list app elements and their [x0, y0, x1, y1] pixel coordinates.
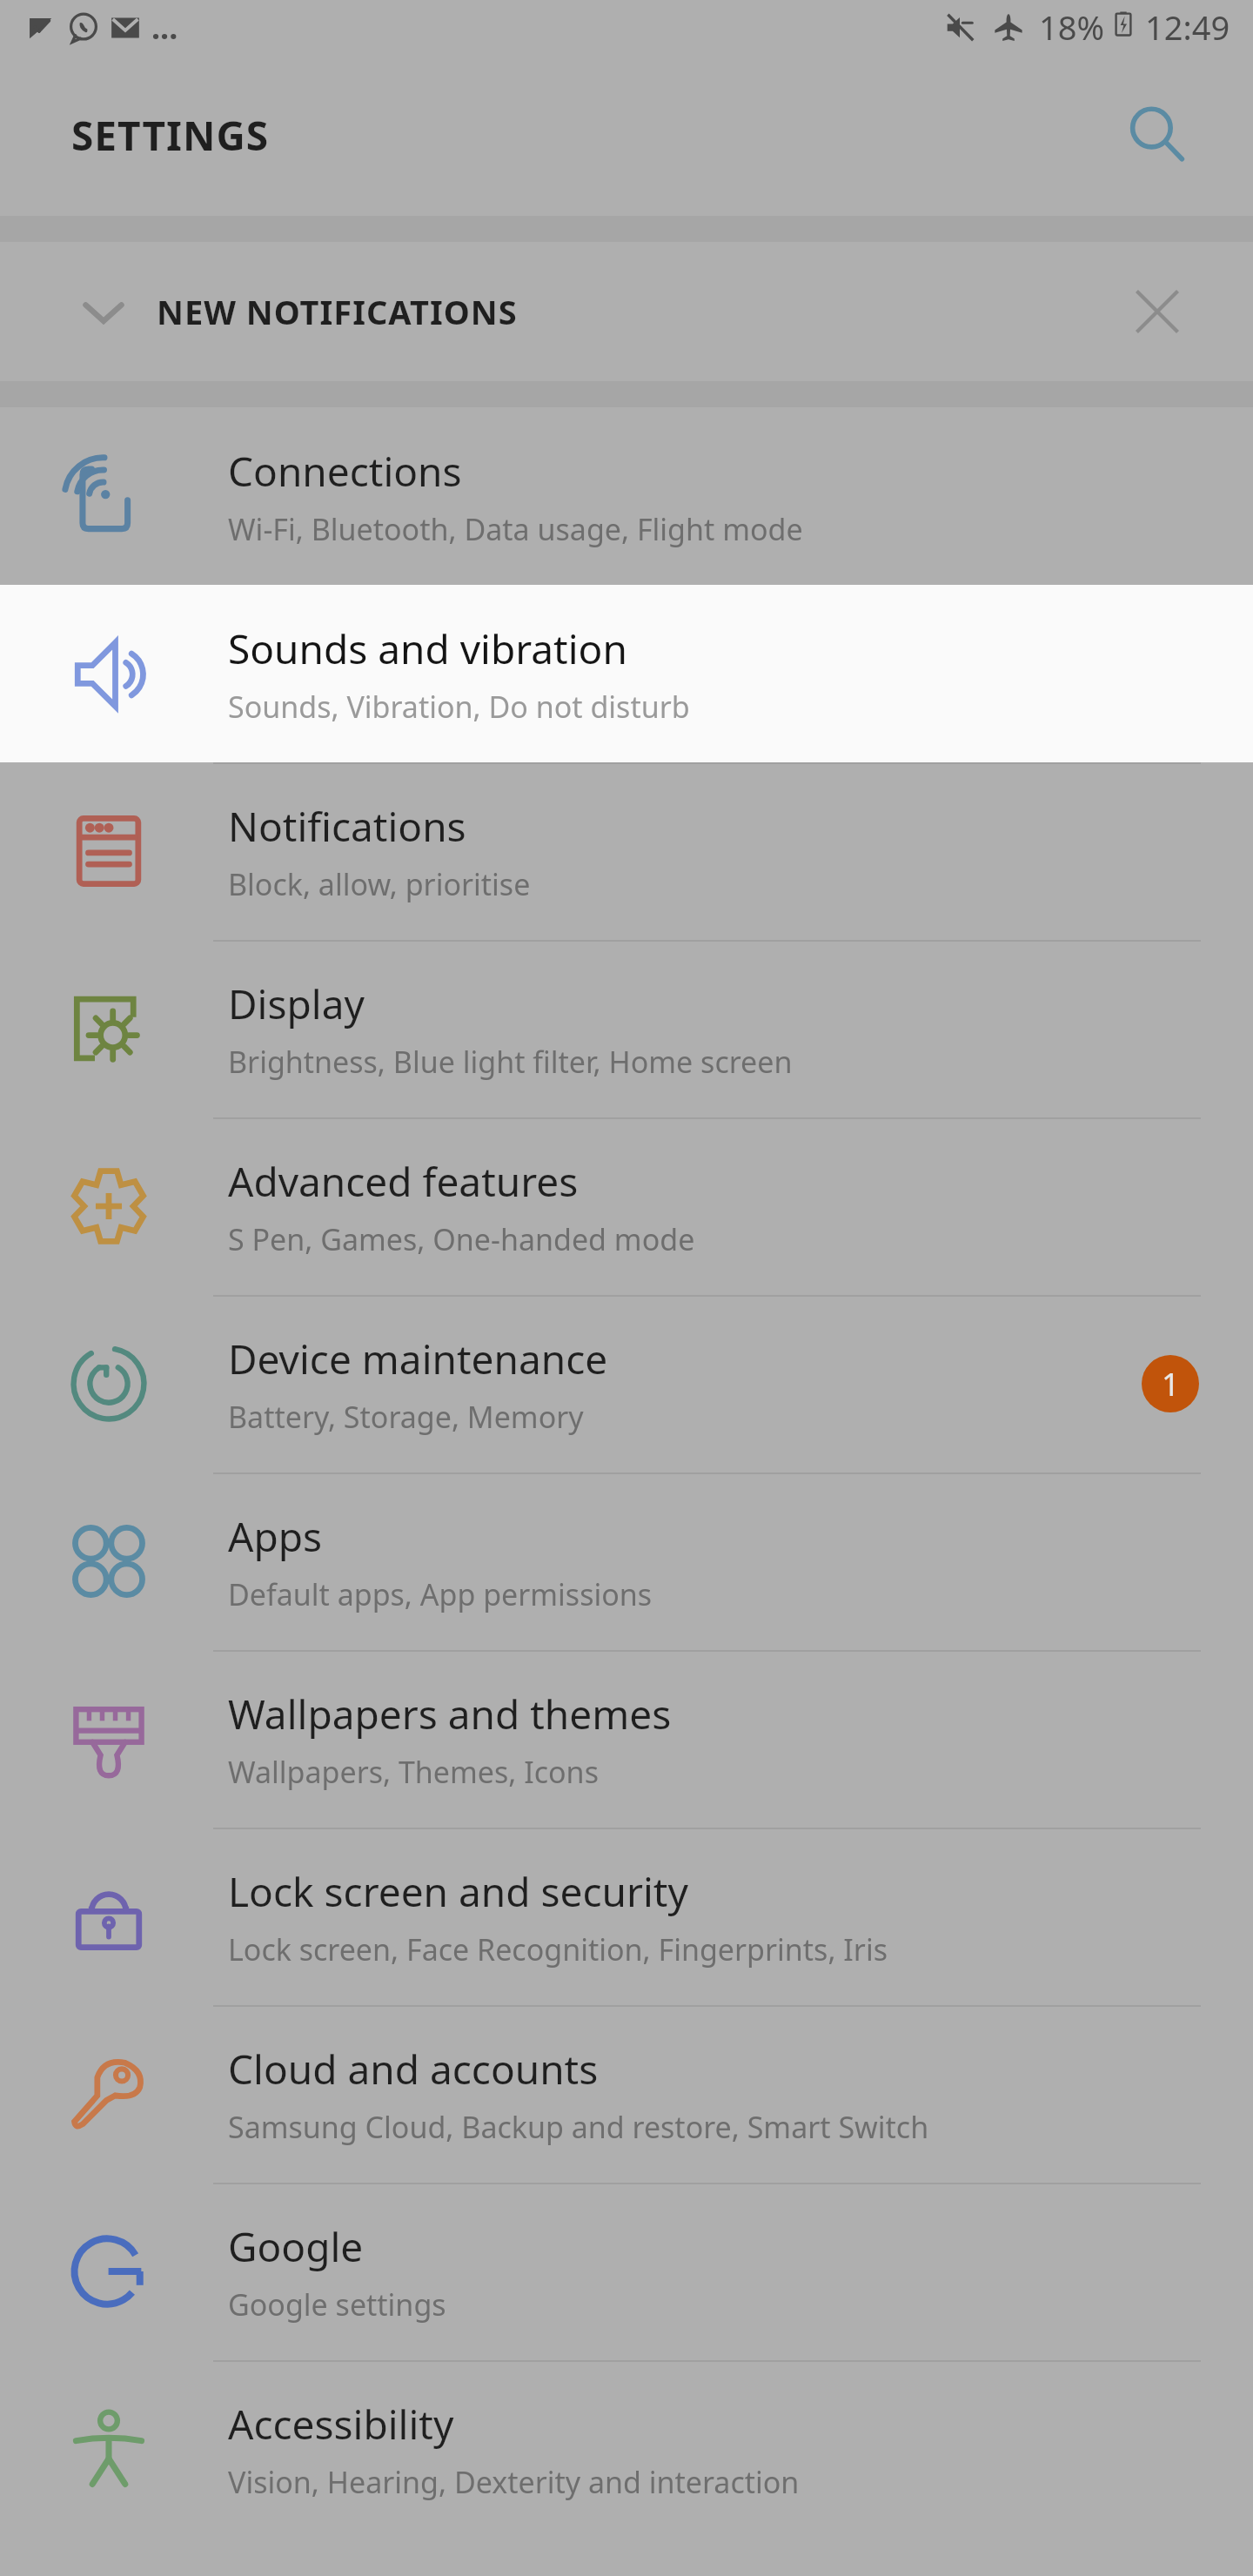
- staticText: Accessibility: [228, 2397, 454, 2452]
- staticText: Wallpapers and themes: [228, 1687, 672, 1741]
- button[interactable]: Google: [0, 2183, 1253, 2360]
- button[interactable]: Apps: [0, 1472, 1253, 1650]
- staticText: 18%: [1039, 4, 1105, 50]
- staticText: Advanced features: [228, 1154, 579, 1209]
- staticText: NEW NOTIFICATIONS: [157, 289, 518, 334]
- staticText: Wi-Fi, Bluetooth, Data usage, Flight mod…: [228, 509, 803, 549]
- button[interactable]: Search: [1116, 93, 1199, 177]
- staticText: Lock screen and security: [228, 1864, 688, 1919]
- staticText: Google settings: [228, 2284, 446, 2324]
- staticText: Wallpapers, Themes, Icons: [228, 1752, 599, 1792]
- staticText: Block, allow, prioritise: [228, 864, 531, 904]
- button[interactable]: Dismiss notifications: [1116, 270, 1199, 353]
- staticText: ...: [151, 6, 178, 49]
- staticText: Apps: [228, 1509, 323, 1564]
- staticText: Default apps, App permissions: [228, 1574, 653, 1614]
- staticText: Battery, Storage, Memory: [228, 1397, 584, 1437]
- staticText: S Pen, Games, One-handed mode: [228, 1219, 695, 1259]
- staticText: Cloud and accounts: [228, 2042, 599, 2096]
- button[interactable]: Sounds and vibration: [0, 585, 1253, 762]
- button[interactable]: Connections: [0, 407, 1253, 585]
- staticText: 1: [1162, 1363, 1180, 1405]
- staticText: Sounds, Vibration, Do not disturb: [228, 687, 690, 727]
- button[interactable]: Notifications: [0, 762, 1253, 940]
- staticText: Vision, Hearing, Dexterity and interacti…: [228, 2462, 800, 2502]
- button[interactable]: Lock screen and security: [0, 1828, 1253, 2005]
- staticText: Sounds and vibration: [228, 621, 627, 676]
- staticText: Device maintenance: [228, 1332, 608, 1386]
- staticText: Lock screen, Face Recognition, Fingerpri…: [228, 1929, 888, 1969]
- staticText: Display: [228, 976, 365, 1031]
- button[interactable]: Wallpapers and themes: [0, 1650, 1253, 1828]
- staticText: 12:49: [1145, 4, 1230, 50]
- button[interactable]: Advanced features: [0, 1117, 1253, 1295]
- staticText: Brightness, Blue light filter, Home scre…: [228, 1042, 793, 1082]
- button[interactable]: Device maintenance: [0, 1295, 1253, 1472]
- staticText: Connections: [228, 444, 462, 499]
- staticText: Samsung Cloud, Backup and restore, Smart…: [228, 2107, 929, 2147]
- staticText: SETTINGS: [71, 108, 270, 163]
- button[interactable]: Display: [0, 940, 1253, 1117]
- button[interactable]: Cloud and accounts: [0, 2005, 1253, 2183]
- button[interactable]: Accessibility: [0, 2360, 1253, 2538]
- staticText: Google: [228, 2219, 364, 2274]
- staticText: Notifications: [228, 799, 466, 854]
- button[interactable]: NEW NOTIFICATIONS: [0, 242, 1253, 381]
